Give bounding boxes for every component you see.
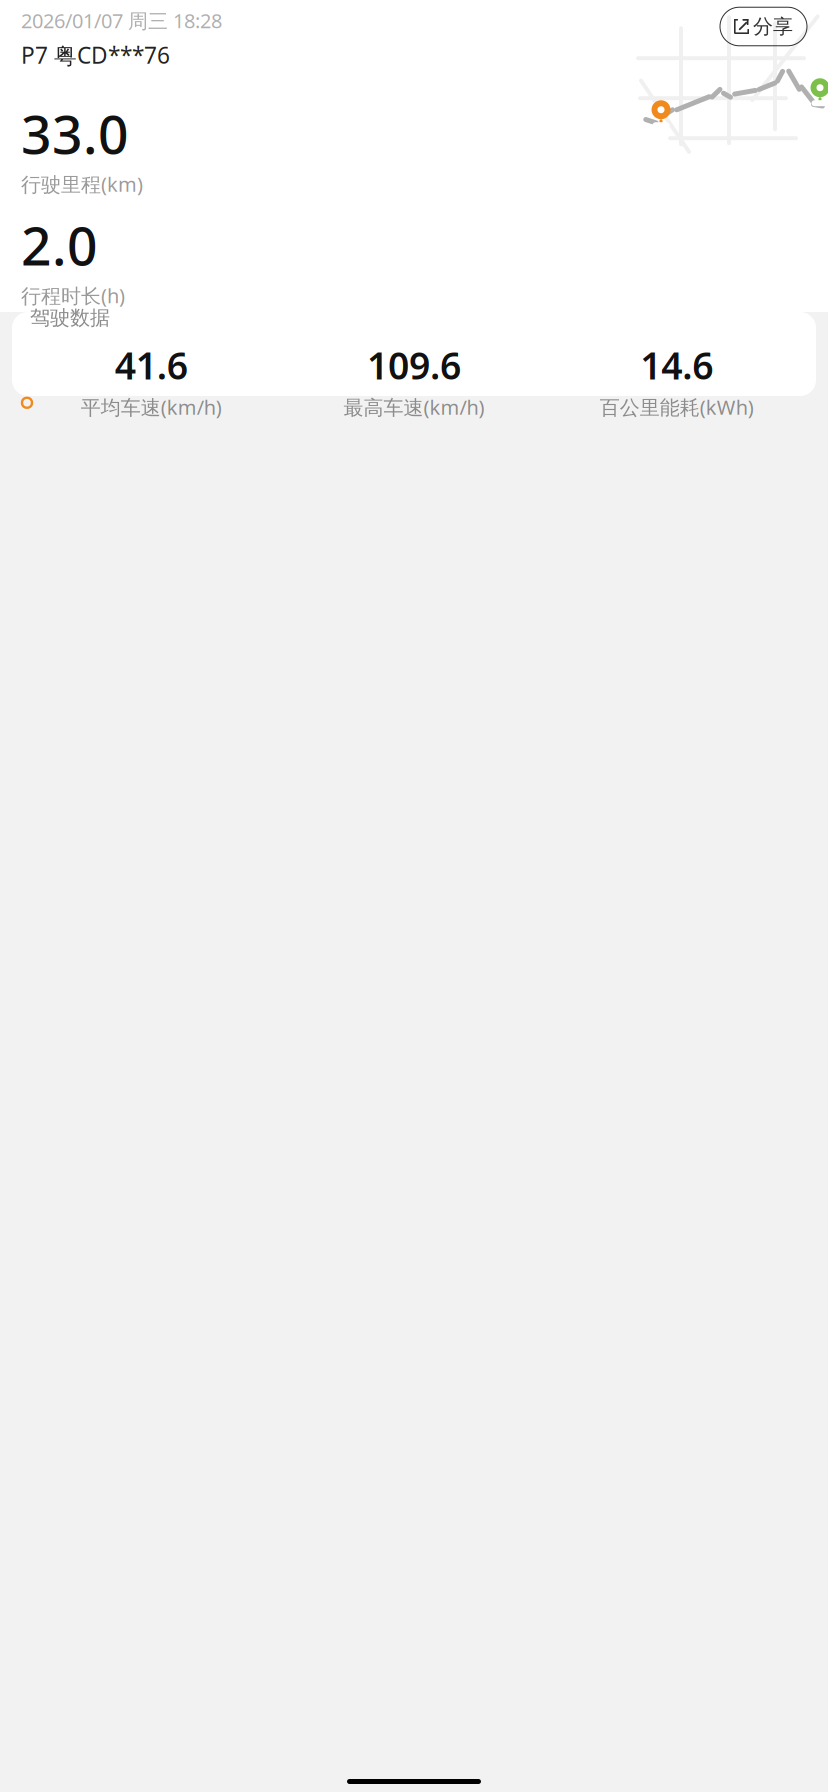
staticText: 41.6 <box>115 340 188 390</box>
staticText: 109.6 <box>367 340 461 390</box>
button[interactable]: 分享 <box>720 7 807 46</box>
staticText: 最高车速(km/h) <box>343 394 484 420</box>
staticText: 2.0 <box>21 209 98 280</box>
staticText: P7 粤CD***76 <box>21 40 170 70</box>
staticText: 平均车速(km/h) <box>81 394 222 420</box>
staticText: 广东省珠海市香洲区前山街道翠微西路 <box>46 348 403 374</box>
staticText: 14.6 <box>640 340 713 390</box>
staticText: 广东省珠海市斗门区白蕉镇连桥路 <box>46 370 361 396</box>
staticText: 33.0 <box>21 98 129 169</box>
staticText: 行驶里程(km) <box>21 171 143 197</box>
staticText: 百公里能耗(kWh) <box>600 394 754 420</box>
staticText: 2026/01/07 周三 18:28 <box>21 7 222 34</box>
staticText: 驾驶数据 <box>30 306 110 330</box>
staticText: 行程时长(h) <box>21 282 125 309</box>
staticText: 分享 <box>753 14 793 39</box>
